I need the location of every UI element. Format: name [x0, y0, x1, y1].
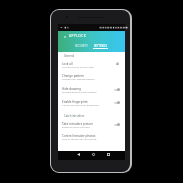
button[interactable]: Control intruder photos — [58, 132, 125, 144]
staticText: Change your existing pattern — [62, 77, 95, 80]
button[interactable]: Enable fingerprint — [58, 98, 125, 111]
staticText: General — [64, 54, 75, 58]
button[interactable]: Take intruders picture — [58, 120, 125, 132]
button[interactable]: Recents — [105, 151, 111, 157]
button[interactable]: Home — [90, 151, 96, 157]
staticText: Enable fingerprint — [62, 100, 88, 104]
staticText: Lock all — [62, 62, 72, 66]
button[interactable]: Menu — [62, 34, 67, 39]
staticText: SECURITY — [75, 44, 88, 48]
staticText: Catch intruders — [64, 114, 85, 118]
staticText: Hide drawing — [62, 87, 82, 91]
staticText: This will lock all of your apps — [62, 65, 94, 68]
button[interactable]: Back — [75, 151, 81, 157]
staticText: Control intruder photos — [62, 134, 96, 138]
staticText: Launch app with your fingerprint — [62, 103, 99, 106]
button[interactable]: Hide drawing — [58, 85, 125, 98]
staticText: APPLOCK — [69, 34, 87, 38]
button[interactable]: Change pattern — [58, 72, 125, 85]
staticText: Invisible pattern while drawing — [62, 90, 97, 93]
staticText: Take intruders picture — [62, 122, 93, 126]
staticText: Enable to catch intruders — [62, 125, 90, 128]
button[interactable]: SECURITY — [72, 41, 91, 52]
button[interactable]: Lock all — [58, 60, 125, 72]
staticText: Change pattern — [62, 74, 84, 78]
staticText: SETTINGS — [94, 44, 107, 48]
staticText: Click to see pics on your phone — [62, 137, 97, 140]
button[interactable]: SETTINGS — [91, 41, 110, 52]
